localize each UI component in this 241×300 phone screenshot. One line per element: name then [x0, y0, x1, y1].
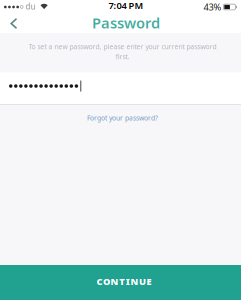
- button[interactable]: Back: [0, 15, 18, 32]
- staticText: CONTINUE: [96, 275, 152, 288]
- staticText: du: [26, 1, 36, 12]
- button[interactable]: CONTINUE: [0, 265, 241, 300]
- button[interactable]: Forgot your password?: [87, 111, 158, 124]
- staticText: To set a new password, please enter your…: [28, 42, 216, 51]
- staticText: 43%: [203, 1, 221, 13]
- staticText: Password: [92, 13, 160, 32]
- staticText: 7:04 PM: [108, 0, 143, 12]
- staticText: Forgot your password?: [87, 113, 158, 122]
- staticText: first.: [115, 52, 129, 61]
